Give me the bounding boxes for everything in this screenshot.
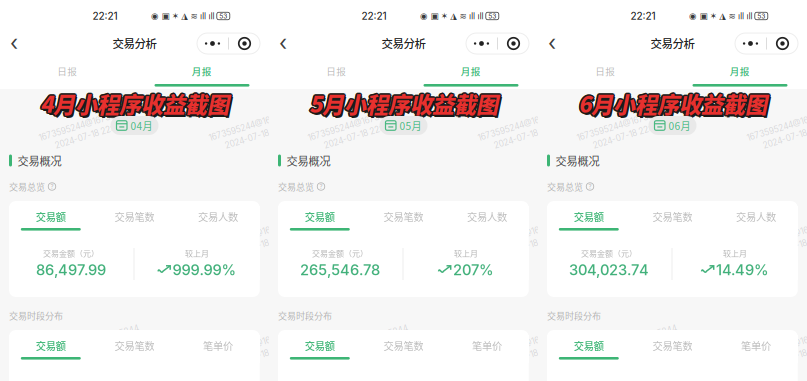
staticText: 1673595244@1673595244 <box>208 224 312 234</box>
button[interactable]: 交易额 <box>9 335 93 363</box>
staticText: 5月小程序收益截图 <box>311 89 500 121</box>
staticText: 2024-07-18 22:19:55 <box>221 16 301 26</box>
staticText: 2024-07-18 22:19:55 <box>419 346 499 356</box>
staticText: 1673595244@1673595244 <box>406 4 510 14</box>
staticText: 2024-07-18 22:19:55 <box>589 346 669 356</box>
button[interactable]: 交易笔数 <box>631 335 714 363</box>
button[interactable]: Back <box>538 29 566 57</box>
staticText: 交易笔数 <box>652 209 692 224</box>
button[interactable]: Back <box>269 29 297 57</box>
staticText: 4月小程序收益截图 <box>41 87 230 119</box>
staticText: 交易笔数 <box>383 209 423 224</box>
staticText: 6月小程序收益截图 <box>578 88 767 120</box>
staticText: 1673595244@1673595244 <box>208 114 312 124</box>
staticText: ◉ <box>689 11 697 21</box>
staticText: 86,497.99 <box>36 261 106 279</box>
button[interactable]: 日报 <box>538 58 672 89</box>
staticText: 2024-07-18 22:19:55 <box>51 346 131 356</box>
staticText: 交易时段分布 <box>9 309 63 322</box>
button[interactable]: More <box>735 33 798 54</box>
staticText: 1673595244@1673595244 <box>746 4 807 14</box>
staticText: 较上月 <box>185 247 209 259</box>
button[interactable]: 交易额 <box>547 335 631 363</box>
staticText: ◮ <box>719 11 726 21</box>
button[interactable]: More <box>197 33 260 54</box>
button[interactable]: 交易笔数 <box>93 206 176 234</box>
staticText: 1673595244@1673595244 <box>307 4 411 14</box>
staticText: 交易总览 <box>278 180 314 193</box>
button[interactable]: 日报 <box>0 58 134 89</box>
button[interactable]: 月报 <box>672 58 807 89</box>
staticText: ‹ <box>279 30 287 56</box>
staticText: 日报 <box>595 64 615 78</box>
button[interactable]: 交易额 <box>278 206 362 234</box>
staticText: 1673595244@1673595244 <box>576 4 680 14</box>
button[interactable]: 交易人数 <box>445 206 529 234</box>
staticText: 1673595244@1673595244 <box>307 224 411 234</box>
button[interactable]: 交易额 <box>547 206 631 234</box>
staticText: 5月小程序收益截图 <box>310 87 499 119</box>
staticText: 交易额 <box>305 209 335 224</box>
staticText: 53 <box>757 12 765 20</box>
button[interactable]: 交易笔数 <box>362 335 445 363</box>
staticText: ? <box>319 183 322 190</box>
staticText: 交易总览 <box>547 180 583 193</box>
staticText: 1673595244@1673595244 <box>137 334 241 344</box>
staticText: 交易总览 <box>9 180 45 193</box>
staticText: 04月 <box>130 118 152 133</box>
button[interactable]: 笔单价 <box>176 335 260 363</box>
button[interactable]: 交易额 <box>9 206 93 234</box>
button[interactable]: 月报 <box>403 58 538 89</box>
staticText: 999.99% <box>172 261 236 279</box>
staticText: 304,023.74 <box>569 261 649 279</box>
staticText: 5月小程序收益截图 <box>309 88 498 120</box>
staticText: 6月小程序收益截图 <box>577 87 766 119</box>
staticText: 5月小程序收益截图 <box>308 86 497 118</box>
button[interactable]: More <box>466 33 529 54</box>
button[interactable]: 日报 <box>269 58 403 89</box>
staticText: ıIl <box>469 11 475 21</box>
button[interactable]: 笔单价 <box>445 335 529 363</box>
staticText: ◉ <box>151 11 159 21</box>
staticText: 2024-07-18 22:19:55 <box>490 16 570 26</box>
staticText: 交易分析 <box>650 35 694 51</box>
staticText: ▣ <box>430 11 438 21</box>
staticText: 6月小程序收益截图 <box>579 86 768 118</box>
staticText: 交易人数 <box>736 209 776 224</box>
button[interactable]: 交易笔数 <box>362 206 445 234</box>
staticText: 5月小程序收益截图 <box>310 86 499 118</box>
staticText: 1673595244@1673595244 <box>38 334 142 344</box>
staticText: 2024-07-18 22:19:55 <box>221 236 301 246</box>
staticText: ✶ <box>172 11 179 21</box>
staticText: 笔单价 <box>472 338 502 353</box>
staticText: 5月小程序收益截图 <box>308 88 497 120</box>
button[interactable]: 交易笔数 <box>631 206 714 234</box>
button[interactable]: 笔单价 <box>714 335 798 363</box>
staticText: 4月小程序收益截图 <box>39 87 228 119</box>
staticText: ıIl <box>200 11 206 21</box>
staticText: 日报 <box>326 64 346 78</box>
button[interactable]: 交易额 <box>278 335 362 363</box>
staticText: 1673595244@1673595244 <box>477 4 581 14</box>
button[interactable]: 交易人数 <box>714 206 798 234</box>
button[interactable]: Back <box>0 29 28 57</box>
staticText: ıIl <box>746 11 752 21</box>
staticText: 1673595244@1673595244 <box>307 114 411 124</box>
button[interactable]: 交易人数 <box>176 206 260 234</box>
button[interactable]: 月报 <box>134 58 269 89</box>
staticText: 1673595244@1673595244 <box>406 114 510 124</box>
staticText: 6月小程序收益截图 <box>578 86 767 118</box>
staticText: 6月小程序收益截图 <box>578 87 767 119</box>
staticText: ✶ <box>441 11 448 21</box>
staticText: 53 <box>219 12 227 20</box>
staticText: 1673595244@1673595244 <box>477 224 581 234</box>
staticText: 1673595244@1673595244 <box>307 334 411 344</box>
staticText: 4月小程序收益截图 <box>40 88 229 120</box>
button[interactable]: 交易笔数 <box>93 335 176 363</box>
staticText: 2024-07-18 22:19:55 <box>759 236 807 246</box>
